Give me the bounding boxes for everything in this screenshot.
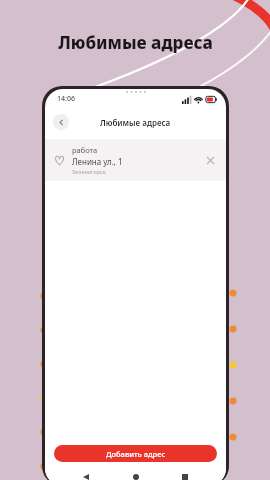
button[interactable]: Домой bbox=[127, 468, 145, 480]
button[interactable]: Удалить bbox=[203, 153, 217, 167]
staticText: работа bbox=[72, 145, 98, 155]
staticText: Добавить адрес bbox=[106, 449, 166, 459]
staticText: Любимые адреса bbox=[100, 117, 171, 128]
staticText: 14:06 bbox=[57, 94, 75, 104]
button[interactable]: Недавние bbox=[176, 468, 194, 480]
button[interactable]: Добавить адрес bbox=[54, 445, 217, 462]
button[interactable]: работа bbox=[45, 139, 226, 181]
staticText: Любимые адреса bbox=[58, 31, 213, 54]
staticText: Ленина ул., 1 bbox=[72, 156, 123, 167]
button[interactable]: Назад bbox=[53, 114, 69, 130]
staticText: Зеленогорск bbox=[72, 168, 106, 175]
button[interactable]: Назад bbox=[77, 468, 95, 480]
